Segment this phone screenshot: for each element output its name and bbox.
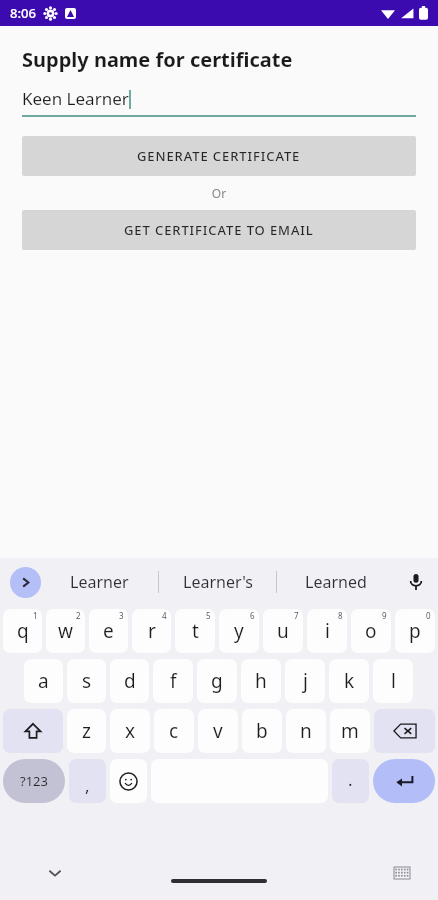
staticText: 4 — [162, 610, 167, 621]
button[interactable]: z — [67, 709, 106, 753]
staticText: x — [125, 718, 136, 744]
staticText: c — [169, 718, 179, 744]
staticText: t — [192, 618, 199, 644]
staticText: 9 — [382, 610, 387, 621]
button[interactable]: j — [285, 659, 325, 703]
staticText: Learned — [305, 571, 367, 593]
staticText: Keen Learner — [22, 87, 129, 110]
staticText: Learner's — [183, 571, 253, 593]
button[interactable]: c — [154, 709, 194, 753]
staticText: v — [213, 718, 223, 744]
button[interactable]: w — [46, 609, 85, 653]
staticText: GENERATE CERTIFICATE — [137, 147, 301, 165]
button[interactable]: Emoji — [110, 759, 147, 803]
staticText: 0 — [426, 610, 431, 621]
button[interactable]: GET CERTIFICATE TO EMAIL — [22, 210, 416, 250]
staticText: s — [82, 668, 92, 694]
button[interactable]: k — [329, 659, 369, 703]
button[interactable]: Enter — [373, 759, 435, 803]
staticText: e — [103, 618, 114, 644]
button[interactable]: Learner — [41, 558, 158, 606]
staticText: Supply name for certificate — [22, 46, 293, 73]
button[interactable]: l — [373, 659, 413, 703]
staticText: 8:06 — [10, 4, 36, 22]
button[interactable]: n — [286, 709, 326, 753]
button[interactable]: More suggestions — [10, 567, 41, 598]
staticText: b — [256, 718, 268, 744]
button[interactable]: u — [263, 609, 303, 653]
staticText: m — [341, 718, 359, 744]
staticText: Learner — [70, 571, 129, 593]
staticText: 2 — [76, 610, 81, 621]
button[interactable]: g — [197, 659, 237, 703]
staticText: o — [365, 618, 377, 644]
button[interactable]: a — [24, 659, 63, 703]
button[interactable]: , — [69, 759, 106, 803]
staticText: y — [234, 618, 244, 644]
staticText: ?123 — [20, 772, 48, 790]
staticText: k — [344, 668, 355, 694]
button[interactable]: Keen Learner — [22, 87, 416, 117]
staticText: f — [170, 668, 177, 694]
staticText: j — [303, 668, 308, 694]
button[interactable]: i — [307, 609, 347, 653]
staticText: r — [148, 618, 156, 644]
staticText: p — [409, 618, 421, 644]
button[interactable]: Voice input — [394, 558, 438, 606]
staticText: GET CERTIFICATE TO EMAIL — [124, 221, 314, 239]
button[interactable]: s — [67, 659, 106, 703]
staticText: i — [325, 618, 330, 644]
staticText: , — [85, 774, 90, 797]
staticText: z — [82, 718, 91, 744]
button[interactable]: f — [153, 659, 193, 703]
button[interactable]: h — [241, 659, 281, 703]
button[interactable]: d — [110, 659, 149, 703]
button[interactable]: x — [110, 709, 150, 753]
staticText: 6 — [250, 610, 255, 621]
button[interactable]: t — [175, 609, 215, 653]
button[interactable]: Shift — [3, 709, 63, 753]
staticText: a — [38, 668, 49, 694]
button[interactable]: Backspace — [374, 709, 435, 753]
button[interactable]: Learner's — [159, 558, 276, 606]
staticText: . — [348, 768, 353, 791]
staticText: l — [391, 668, 396, 694]
button[interactable]: e — [89, 609, 128, 653]
staticText: 3 — [119, 610, 124, 621]
button[interactable]: p — [395, 609, 435, 653]
button[interactable]: b — [242, 709, 282, 753]
staticText: u — [277, 618, 289, 644]
staticText: g — [211, 668, 223, 694]
button[interactable]: Hide keyboard — [40, 858, 70, 888]
staticText: n — [300, 718, 312, 744]
staticText: q — [17, 618, 29, 644]
button[interactable]: v — [198, 709, 238, 753]
staticText: w — [58, 618, 73, 644]
staticText: 8 — [338, 610, 343, 621]
button[interactable]: GENERATE CERTIFICATE — [22, 136, 416, 176]
button[interactable]: r — [132, 609, 171, 653]
button[interactable]: Learned — [277, 558, 394, 606]
button[interactable]: ?123 — [3, 759, 65, 803]
staticText: 7 — [294, 610, 299, 621]
button[interactable]: y — [219, 609, 259, 653]
button[interactable]: . — [332, 759, 369, 803]
button[interactable]: q — [3, 609, 42, 653]
staticText: h — [255, 668, 267, 694]
button[interactable]: Switch keyboard — [388, 859, 416, 887]
staticText: 1 — [33, 610, 38, 621]
staticText: Or — [0, 185, 438, 201]
button[interactable]: m — [330, 709, 370, 753]
button[interactable]: o — [351, 609, 391, 653]
staticText: d — [124, 668, 136, 694]
staticText: 5 — [206, 610, 211, 621]
